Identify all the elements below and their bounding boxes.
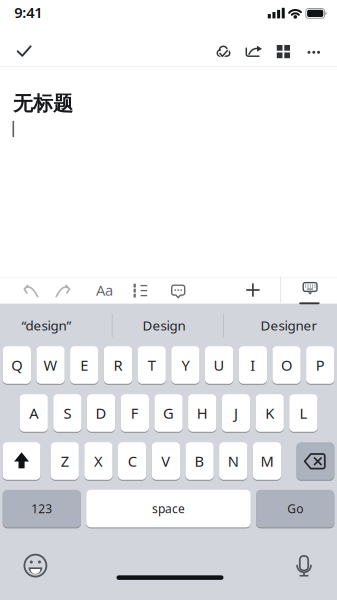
- button[interactable]: O: [272, 346, 301, 384]
- staticText: A: [29, 403, 38, 423]
- button[interactable]: space: [86, 489, 251, 528]
- staticText: B: [195, 451, 205, 471]
- staticText: 9:41: [14, 3, 42, 22]
- button[interactable]: Share: [240, 39, 266, 63]
- staticText: C: [128, 451, 137, 471]
- button[interactable]: More: [303, 43, 325, 61]
- button[interactable]: G: [154, 394, 183, 432]
- button[interactable]: M: [253, 442, 281, 480]
- staticText: T: [148, 355, 156, 375]
- staticText: Designer: [260, 316, 317, 334]
- button[interactable]: W: [36, 346, 65, 384]
- staticText: H: [197, 403, 208, 423]
- button[interactable]: Apps: [272, 40, 294, 62]
- button[interactable]: “design”: [1, 309, 111, 342]
- staticText: E: [80, 355, 88, 375]
- button[interactable]: E: [70, 346, 98, 384]
- button[interactable]: Dictate: [292, 552, 316, 580]
- button[interactable]: N: [219, 442, 247, 480]
- staticText: U: [214, 355, 225, 375]
- staticText: J: [234, 403, 238, 423]
- staticText: Design: [142, 316, 185, 334]
- button[interactable]: Shift: [3, 442, 40, 480]
- button[interactable]: Lists: [129, 281, 151, 301]
- button[interactable]: U: [205, 346, 233, 384]
- button[interactable]: Synced: [211, 40, 235, 62]
- button[interactable]: Delete: [297, 442, 334, 480]
- button[interactable]: C: [118, 442, 146, 480]
- button[interactable]: L: [289, 394, 317, 432]
- button[interactable]: B: [185, 442, 214, 480]
- staticText: N: [228, 451, 239, 471]
- button[interactable]: Text format: [90, 279, 118, 301]
- button[interactable]: Y: [171, 346, 199, 384]
- staticText: “design”: [21, 316, 71, 334]
- button[interactable]: Insert: [241, 279, 265, 301]
- staticText: Go: [287, 501, 303, 516]
- button[interactable]: Redo: [51, 281, 75, 301]
- button[interactable]: Emoji: [21, 552, 49, 580]
- button[interactable]: A: [20, 394, 48, 432]
- button[interactable]: I: [239, 346, 267, 384]
- staticText: Q: [11, 355, 22, 375]
- button[interactable]: Z: [51, 442, 79, 480]
- staticText: F: [131, 403, 139, 423]
- button[interactable]: T: [137, 346, 166, 384]
- button[interactable]: 123: [3, 489, 81, 528]
- staticText: L: [299, 403, 307, 423]
- button[interactable]: X: [84, 442, 113, 480]
- staticText: Aa: [96, 280, 113, 300]
- button[interactable]: Undo: [18, 281, 42, 301]
- button[interactable]: Hide keyboard: [296, 279, 324, 305]
- button[interactable]: Designer: [225, 309, 336, 342]
- staticText: Z: [61, 451, 69, 471]
- staticText: X: [94, 451, 103, 471]
- button[interactable]: H: [188, 394, 216, 432]
- staticText: Y: [181, 355, 189, 375]
- staticText: 无标题: [13, 91, 73, 116]
- button[interactable]: Done: [12, 40, 36, 62]
- staticText: G: [163, 403, 174, 423]
- button[interactable]: P: [306, 346, 334, 384]
- staticText: V: [161, 451, 170, 471]
- staticText: W: [44, 355, 58, 375]
- button[interactable]: Design: [113, 309, 222, 342]
- staticText: O: [281, 355, 292, 375]
- button[interactable]: D: [87, 394, 115, 432]
- button[interactable]: K: [255, 394, 284, 432]
- button[interactable]: J: [222, 394, 250, 432]
- button[interactable]: Comment: [167, 281, 189, 301]
- staticText: K: [265, 403, 274, 423]
- button[interactable]: S: [53, 394, 82, 432]
- staticText: S: [63, 403, 71, 423]
- button[interactable]: Q: [3, 346, 31, 384]
- staticText: 123: [31, 501, 52, 516]
- button[interactable]: Go: [256, 489, 334, 528]
- staticText: M: [260, 451, 273, 471]
- staticText: I: [250, 355, 255, 375]
- staticText: space: [152, 501, 185, 516]
- staticText: R: [113, 355, 122, 375]
- staticText: D: [96, 403, 107, 423]
- button[interactable]: V: [152, 442, 180, 480]
- button[interactable]: F: [121, 394, 149, 432]
- button[interactable]: R: [104, 346, 132, 384]
- staticText: P: [316, 355, 325, 375]
